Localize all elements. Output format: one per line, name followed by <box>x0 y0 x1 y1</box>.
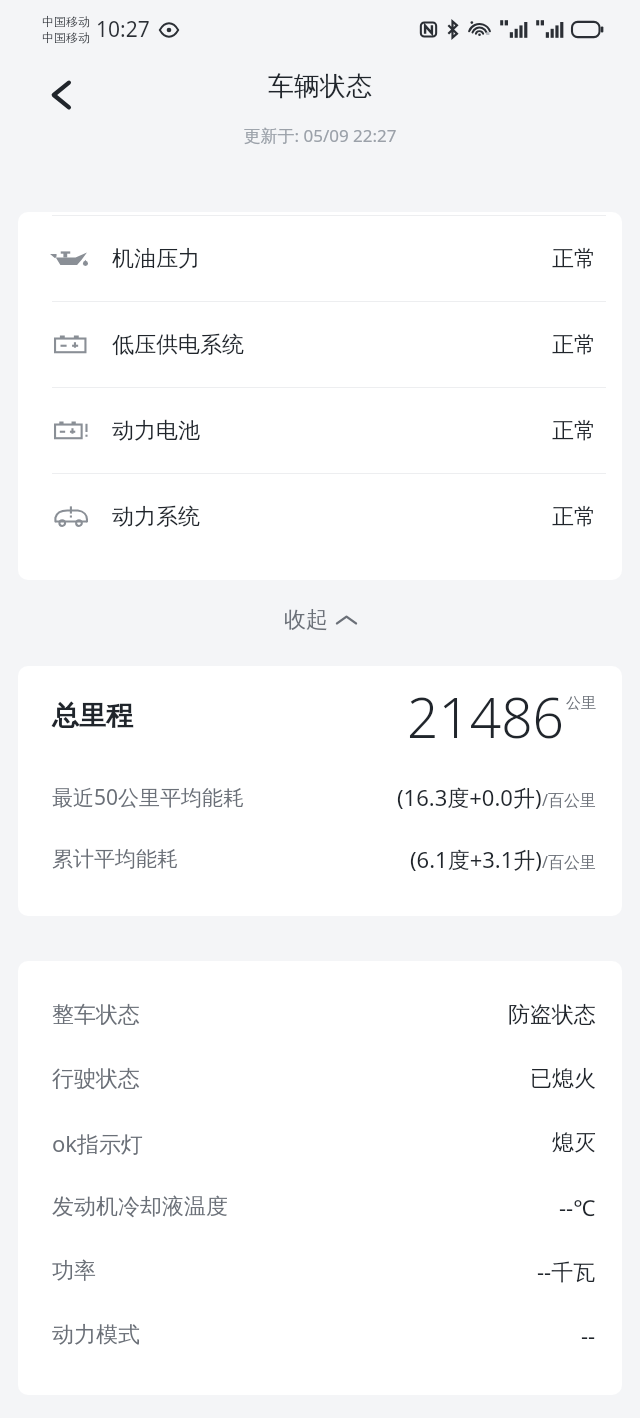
staticText: 最近50公里平均能耗 <box>52 783 245 812</box>
staticText: 中国移动 <box>42 14 90 29</box>
staticText: /百公里 <box>542 851 596 873</box>
staticText: ok指示灯 <box>52 1128 144 1158</box>
staticText: 正常 <box>552 331 596 359</box>
button[interactable]: 动力电池 <box>18 388 622 473</box>
staticText: 累计平均能耗 <box>52 846 178 872</box>
staticText: 功率 <box>52 1257 96 1285</box>
staticText: (6.1度+3.1升) <box>410 844 542 874</box>
button[interactable]: 动力系统 <box>18 474 622 559</box>
staticText: /百公里 <box>542 789 596 811</box>
staticText: 公里 <box>566 694 596 713</box>
staticText: 整车状态 <box>52 1001 140 1029</box>
staticText: 动力系统 <box>112 503 200 531</box>
staticText: 行驶状态 <box>52 1065 140 1093</box>
staticText: 防盗状态 <box>508 1001 596 1029</box>
staticText: 21486 <box>407 679 565 754</box>
staticText: --千瓦 <box>537 1256 596 1286</box>
staticText: 总里程 <box>52 699 133 733</box>
staticText: 车辆状态 <box>268 70 372 103</box>
staticText: 正常 <box>552 417 596 445</box>
staticText: 动力电池 <box>112 417 200 445</box>
button[interactable]: Back <box>28 64 90 126</box>
staticText: 10:27 <box>96 15 150 44</box>
staticText: -- <box>581 1320 596 1350</box>
staticText: 更新于: 05/09 22:27 <box>243 124 397 147</box>
staticText: 已熄火 <box>530 1065 596 1093</box>
staticText: 低压供电系统 <box>112 331 244 359</box>
staticText: 正常 <box>552 503 596 531</box>
staticText: 发动机冷却液温度 <box>52 1193 228 1221</box>
staticText: (16.3度+0.0升) <box>397 782 542 812</box>
staticText: 机油压力 <box>112 245 200 273</box>
staticText: 中国移动 <box>42 30 90 45</box>
staticText: 动力模式 <box>52 1321 140 1349</box>
staticText: 熄灭 <box>552 1129 596 1157</box>
staticText: 收起 <box>284 606 328 634</box>
button[interactable]: 低压供电系统 <box>18 302 622 387</box>
button[interactable]: 收起 <box>258 596 382 644</box>
staticText: 正常 <box>552 245 596 273</box>
button[interactable]: 机油压力 <box>18 216 622 301</box>
staticText: --℃ <box>559 1192 596 1222</box>
